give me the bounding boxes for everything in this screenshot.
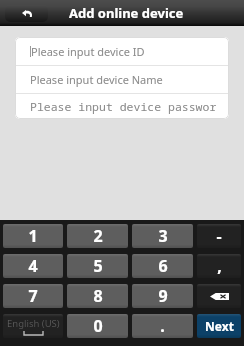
staticText: Next <box>205 318 234 334</box>
button[interactable]: Back <box>5 5 48 22</box>
other: Backspace <box>210 293 229 300</box>
button[interactable]: . <box>132 314 193 338</box>
staticText: 3 <box>158 225 168 247</box>
staticText: , <box>217 255 222 277</box>
staticText: 5 <box>93 255 103 277</box>
button[interactable]: 2 <box>67 224 128 248</box>
staticText: Add online device <box>69 4 184 22</box>
staticText: 9 <box>158 285 168 307</box>
button[interactable]: 3 <box>132 224 193 248</box>
button[interactable]: 5 <box>67 254 128 278</box>
button[interactable]: , <box>197 254 241 278</box>
button[interactable]: 8 <box>67 284 128 308</box>
staticText: Please input device passwor <box>30 99 217 115</box>
button[interactable]: 1 <box>3 224 63 248</box>
staticText: 1 <box>28 225 38 247</box>
button[interactable]: Backspace <box>197 284 241 308</box>
button[interactable]: Please input device Name <box>15 66 229 93</box>
button[interactable]: Next <box>197 314 241 338</box>
staticText: . <box>160 315 165 337</box>
button[interactable]: - <box>197 224 241 248</box>
button[interactable]: 7 <box>3 284 63 308</box>
button[interactable]: 0 <box>67 314 128 338</box>
button[interactable]: 9 <box>132 284 193 308</box>
staticText: 0 <box>93 315 103 337</box>
staticText: - <box>216 225 222 247</box>
staticText: Please input device Name <box>30 72 163 87</box>
staticText: 8 <box>93 285 103 307</box>
staticText: Please input device ID <box>31 44 145 59</box>
staticText: 4 <box>28 255 38 277</box>
staticText: 7 <box>28 285 38 307</box>
staticText: English (US) <box>7 317 60 330</box>
button[interactable]: Please input device ID <box>15 37 229 65</box>
button[interactable]: English (US) <box>3 314 63 338</box>
button[interactable]: 6 <box>132 254 193 278</box>
button[interactable]: 4 <box>3 254 63 278</box>
staticText: 2 <box>93 225 103 247</box>
staticText: 6 <box>158 255 168 277</box>
button[interactable]: Please input device passwor <box>15 94 229 119</box>
